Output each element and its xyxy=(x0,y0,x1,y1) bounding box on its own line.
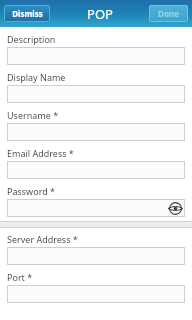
button[interactable]: Show password xyxy=(7,199,185,217)
staticText: Server Address * xyxy=(7,233,78,245)
staticText: Username * xyxy=(7,109,59,121)
staticText: Description xyxy=(7,33,56,45)
button[interactable]: Show password xyxy=(169,202,182,215)
staticText: Email Address * xyxy=(7,147,74,159)
button[interactable] xyxy=(7,123,185,141)
button[interactable] xyxy=(7,85,185,103)
button[interactable] xyxy=(7,247,185,265)
staticText: Display Name xyxy=(7,71,66,83)
button[interactable]: Done xyxy=(149,5,188,22)
button[interactable] xyxy=(7,47,185,65)
button[interactable] xyxy=(7,161,185,179)
staticText: POP xyxy=(87,5,113,23)
staticText: Dismiss xyxy=(12,8,43,19)
staticText: Password * xyxy=(7,185,56,197)
staticText: Done xyxy=(158,8,179,19)
button[interactable]: Dismiss xyxy=(4,5,50,22)
staticText: Port * xyxy=(7,271,33,283)
button[interactable] xyxy=(7,285,185,303)
